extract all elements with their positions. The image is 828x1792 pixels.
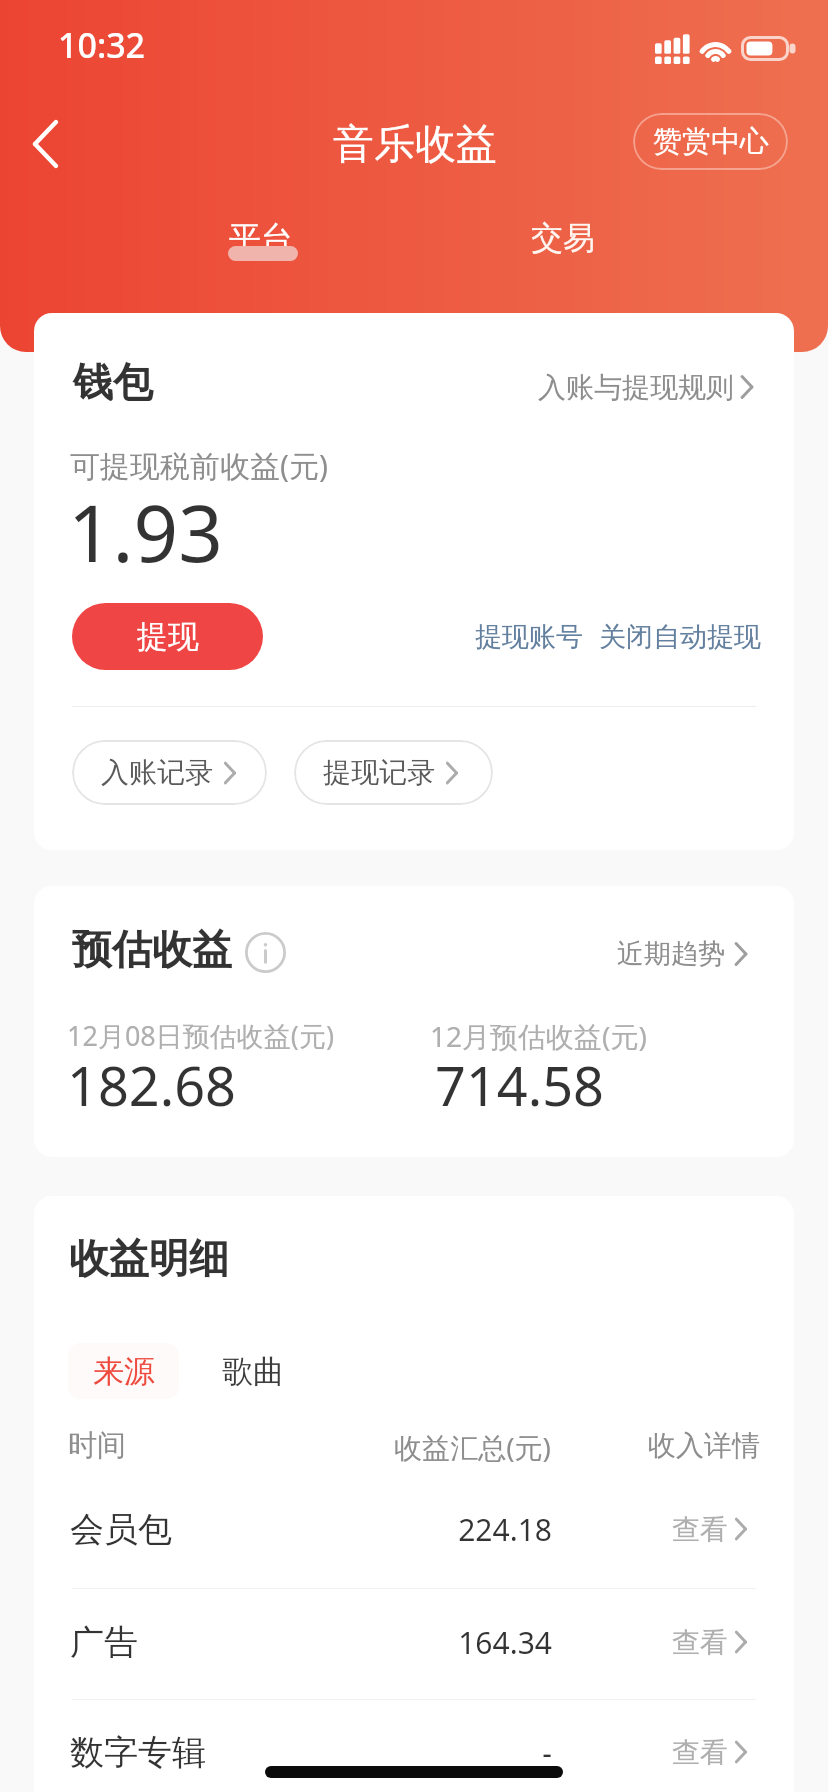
button[interactable]: 平台 [192,204,330,276]
button[interactable]: 广告 [34,1594,794,1690]
staticText: 提现账号 [475,620,583,654]
staticText: 收入详情 [648,1428,760,1463]
button[interactable]: 入账与提现规则 [538,363,757,411]
staticText: 音乐收益 [333,119,497,171]
button[interactable]: 数字专辑 [34,1704,794,1792]
staticText: 数字专辑 [70,1731,206,1774]
staticText: 12月08日预估收益(元) [67,1017,334,1054]
staticText: - [542,1732,552,1773]
button[interactable]: 关闭自动提现 [599,603,761,670]
staticText: 入账与提现规则 [538,370,734,405]
staticText: 可提现税前收益(元) [70,445,328,486]
staticText: 收益明细 [69,1233,229,1283]
staticText: 入账记录 [101,755,213,790]
button[interactable]: 交易 [494,204,632,276]
button[interactable]: Back [10,110,80,178]
button[interactable]: 提现记录 [294,740,493,805]
button[interactable]: 歌曲 [208,1343,298,1399]
staticText: 收益汇总(元) [394,1428,551,1466]
staticText: 平台 [229,218,293,258]
staticText: 时间 [68,1427,126,1464]
staticText: 近期趋势 [617,937,725,971]
staticText: 赞赏中心 [653,123,769,160]
staticText: 交易 [531,218,595,258]
staticText: 关闭自动提现 [599,620,761,654]
button[interactable]: Info [245,932,286,973]
staticText: 提现记录 [323,755,435,790]
staticText: 1.93 [68,479,223,585]
staticText: 714.58 [435,1048,604,1122]
staticText: 钱包 [73,357,153,407]
button[interactable]: 提现 [72,603,263,670]
button[interactable]: 赞赏中心 [633,113,788,170]
button[interactable]: 入账记录 [72,740,267,805]
staticText: 预估收益 [72,924,232,974]
staticText: 歌曲 [222,1352,284,1391]
staticText: 查看 [672,1735,728,1770]
staticText: 查看 [672,1512,728,1547]
button[interactable]: 近期趋势 [617,930,751,978]
staticText: 查看 [672,1625,728,1660]
staticText: 164.34 [458,1622,552,1663]
staticText: 10:32 [58,22,146,68]
staticText: 182.68 [67,1048,236,1122]
staticText: 广告 [70,1621,138,1664]
button[interactable]: 来源 [68,1343,179,1399]
button[interactable]: 提现账号 [475,603,583,670]
staticText: 来源 [93,1352,155,1391]
staticText: 224.18 [458,1509,552,1550]
staticText: 提现 [137,617,199,656]
button[interactable]: 会员包 [34,1481,794,1577]
staticText: 会员包 [70,1508,172,1551]
staticText: 12月预估收益(元) [430,1017,647,1055]
